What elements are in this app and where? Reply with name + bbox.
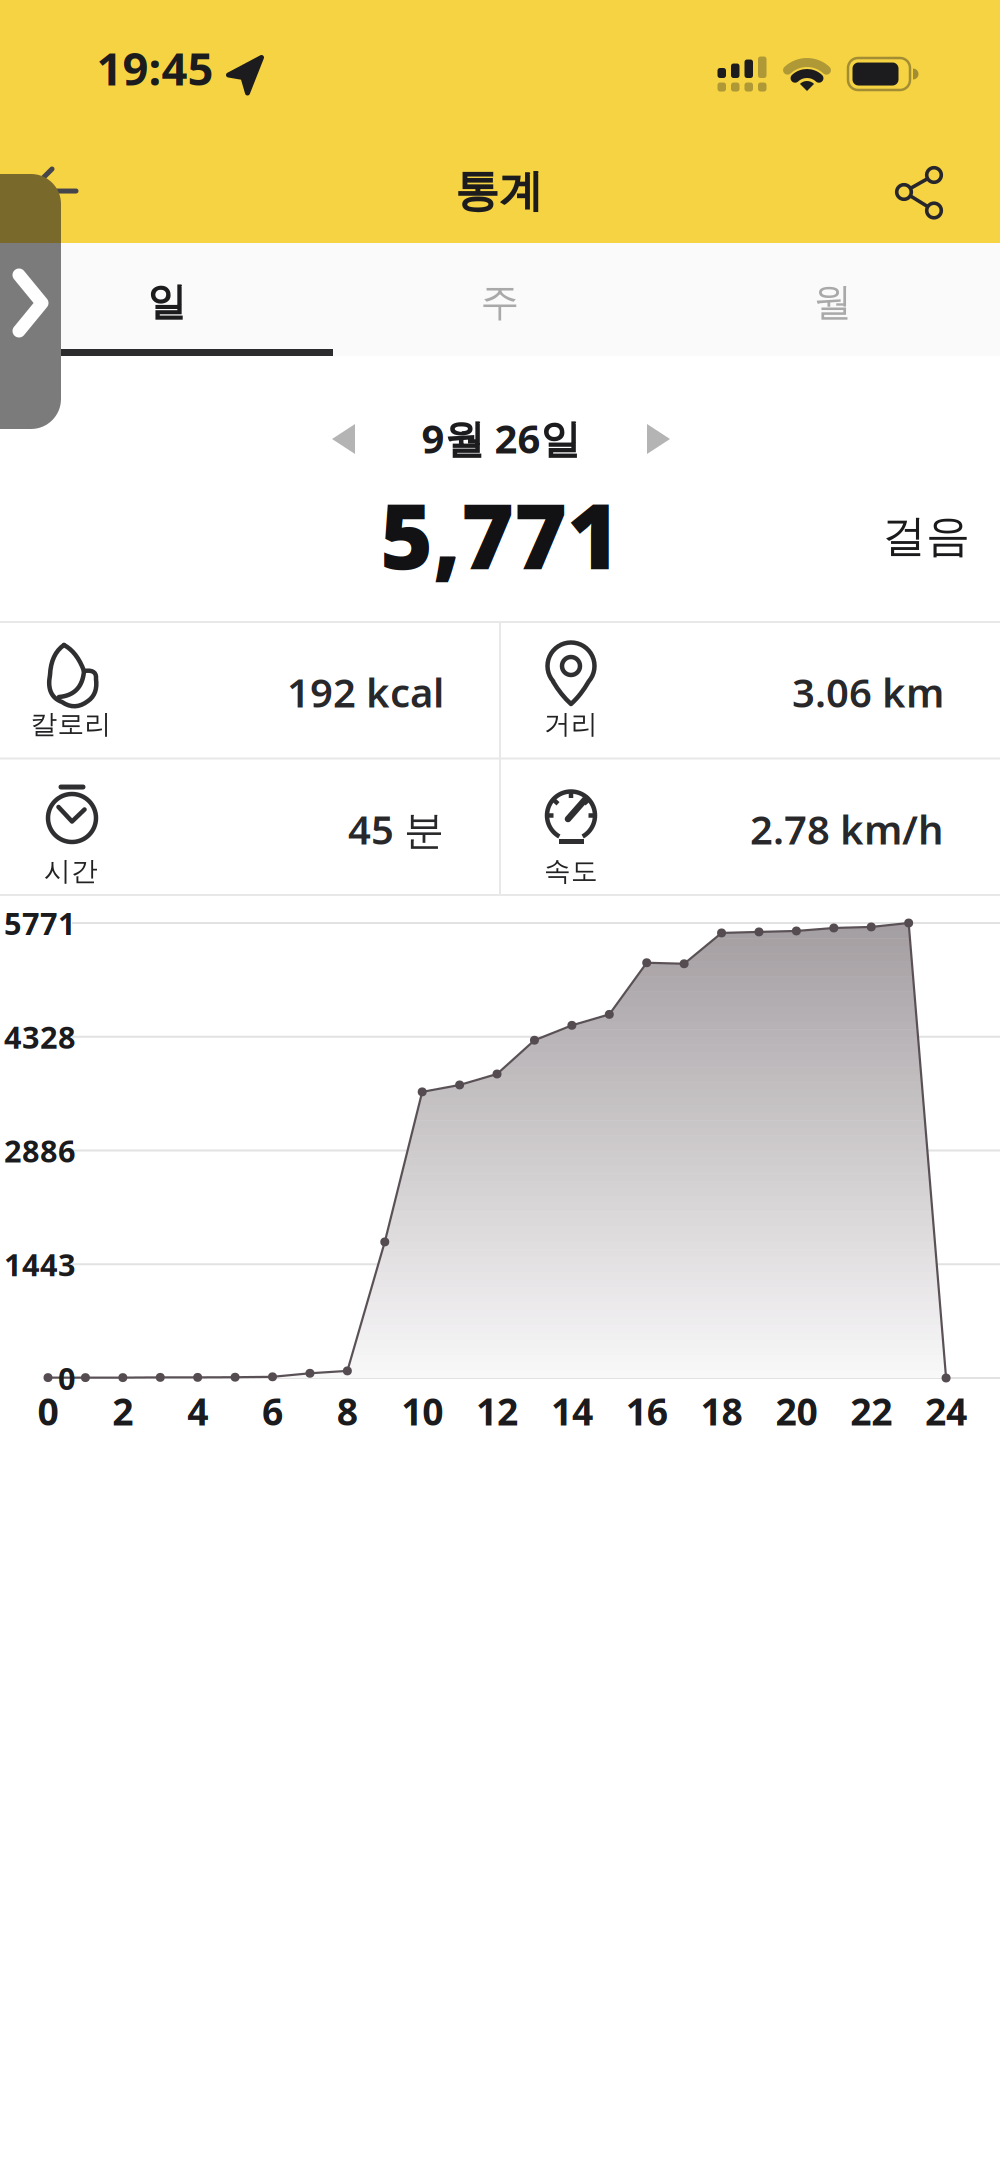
staticText: 월 [813,278,852,326]
staticText: 45 분 [348,802,444,855]
button[interactable]: 주 [333,249,666,355]
staticText: 주 [480,278,519,326]
staticText: 3.06 km [792,665,944,718]
staticText: 2 [112,1386,133,1436]
button[interactable]: 월 [666,249,999,355]
staticText: 거리 [544,708,598,740]
staticText: 5771 [4,903,76,943]
staticText: 192 kcal [287,665,444,718]
staticText: 시간 [44,855,98,887]
staticText: 속도 [544,855,598,887]
staticText: 9월 26일 [421,411,580,464]
button[interactable]: Next day [624,414,694,464]
staticText: 16 [626,1386,668,1436]
staticText: 22 [850,1386,892,1436]
button[interactable]: Previous day [308,414,378,464]
staticText: 1443 [4,1244,76,1285]
staticText: 0 [37,1386,58,1436]
staticText: 0 [58,1358,76,1398]
button[interactable]: Open side panel [0,174,61,429]
staticText: 걸음 [882,509,970,563]
staticText: 5,771 [380,474,620,594]
button[interactable]: Back [23,157,93,227]
staticText: 19:45 [96,38,213,98]
staticText: 통계 [455,164,543,218]
staticText: 18 [701,1386,743,1436]
staticText: 2.78 km/h [750,802,944,855]
staticText: 8 [337,1386,358,1436]
staticText: 6 [262,1386,283,1436]
staticText: 24 [925,1386,967,1436]
button[interactable]: 일 [0,249,333,355]
staticText: 20 [775,1386,817,1436]
staticText: 14 [551,1386,593,1436]
staticText: 12 [476,1386,518,1436]
staticText: 일 [147,278,186,326]
staticText: 칼로리 [30,708,111,740]
staticText: 2886 [4,1130,76,1171]
staticText: 4328 [4,1016,76,1057]
button[interactable]: Share [879,152,959,232]
staticText: 4 [187,1386,208,1436]
staticText: 10 [401,1386,443,1436]
